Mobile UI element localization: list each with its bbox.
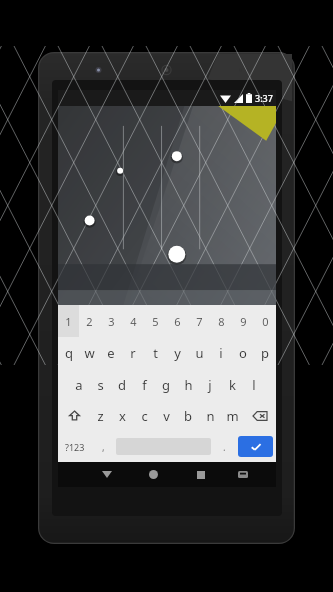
staticText: k: [229, 376, 236, 394]
staticText: f: [142, 376, 147, 394]
button[interactable]: 6: [166, 305, 188, 337]
button[interactable]: Shift: [58, 400, 90, 431]
button[interactable]: i: [210, 337, 232, 369]
button[interactable]: t: [144, 337, 166, 369]
staticText: 0: [262, 314, 269, 329]
staticText: z: [97, 407, 104, 425]
staticText: 9: [240, 314, 247, 329]
button[interactable]: f: [133, 369, 155, 400]
button[interactable]: 3: [100, 305, 122, 337]
button[interactable]: Enter: [238, 436, 273, 457]
staticText: y: [174, 344, 181, 362]
staticText: 2: [86, 314, 93, 329]
button[interactable]: 5: [144, 305, 166, 337]
button[interactable]: Home: [130, 462, 177, 487]
staticText: ,: [102, 440, 105, 454]
staticText: j: [208, 376, 212, 394]
staticText: 4: [130, 314, 137, 329]
staticText: c: [141, 407, 148, 425]
button[interactable]: d: [111, 369, 133, 400]
staticText: i: [219, 344, 223, 362]
button[interactable]: ?123: [58, 431, 92, 462]
button[interactable]: x: [111, 400, 133, 431]
staticText: n: [206, 407, 215, 425]
button[interactable]: Hide keyboard: [83, 462, 130, 487]
button[interactable]: p: [254, 337, 276, 369]
staticText: 5: [152, 314, 159, 329]
staticText: 7: [196, 314, 203, 329]
button[interactable]: m: [221, 400, 243, 431]
staticText: o: [239, 344, 247, 362]
staticText: s: [97, 376, 104, 394]
button[interactable]: 2: [79, 305, 100, 337]
button[interactable]: a: [68, 369, 89, 400]
button[interactable]: ,: [92, 431, 114, 462]
button[interactable]: r: [122, 337, 144, 369]
staticText: .: [223, 440, 226, 454]
button[interactable]: n: [199, 400, 221, 431]
button[interactable]: Backspace: [243, 400, 276, 431]
staticText: r: [130, 344, 136, 362]
button[interactable]: v: [155, 400, 177, 431]
staticText: 3: [108, 314, 115, 329]
staticText: w: [84, 344, 95, 362]
button[interactable]: 9: [232, 305, 254, 337]
staticText: l: [252, 376, 256, 394]
staticText: m: [226, 407, 239, 425]
button[interactable]: k: [221, 369, 243, 400]
staticText: g: [162, 376, 170, 394]
button[interactable]: l: [243, 369, 265, 400]
staticText: 1: [65, 314, 72, 329]
button[interactable]: 7: [188, 305, 210, 337]
staticText: a: [75, 376, 83, 394]
staticText: v: [163, 407, 170, 425]
button[interactable]: .: [213, 431, 235, 462]
button[interactable]: Recents: [177, 462, 224, 487]
button[interactable]: Switch keyboard: [224, 462, 262, 487]
button[interactable]: w: [79, 337, 100, 369]
staticText: b: [184, 407, 192, 425]
button[interactable]: y: [166, 337, 188, 369]
staticText: 6: [174, 314, 181, 329]
staticText: u: [195, 344, 204, 362]
staticText: 3:37: [255, 92, 273, 104]
button[interactable]: u: [188, 337, 210, 369]
button[interactable]: e: [100, 337, 122, 369]
button[interactable]: o: [232, 337, 254, 369]
button[interactable]: q: [58, 337, 79, 369]
staticText: e: [107, 344, 115, 362]
staticText: t: [153, 344, 158, 362]
staticText: q: [65, 344, 73, 362]
staticText: 8: [218, 314, 225, 329]
staticText: x: [119, 407, 126, 425]
staticText: ?123: [65, 441, 85, 453]
button[interactable]: h: [177, 369, 199, 400]
button[interactable]: z: [90, 400, 111, 431]
staticText: p: [261, 344, 269, 362]
button[interactable]: 0: [254, 305, 276, 337]
staticText: h: [184, 376, 193, 394]
button[interactable]: g: [155, 369, 177, 400]
button[interactable]: c: [133, 400, 155, 431]
button[interactable]: j: [199, 369, 221, 400]
staticText: d: [118, 376, 126, 394]
button[interactable]: 8: [210, 305, 232, 337]
button[interactable]: 1: [58, 305, 79, 337]
button[interactable]: s: [89, 369, 111, 400]
button[interactable]: b: [177, 400, 199, 431]
button[interactable]: 4: [122, 305, 144, 337]
